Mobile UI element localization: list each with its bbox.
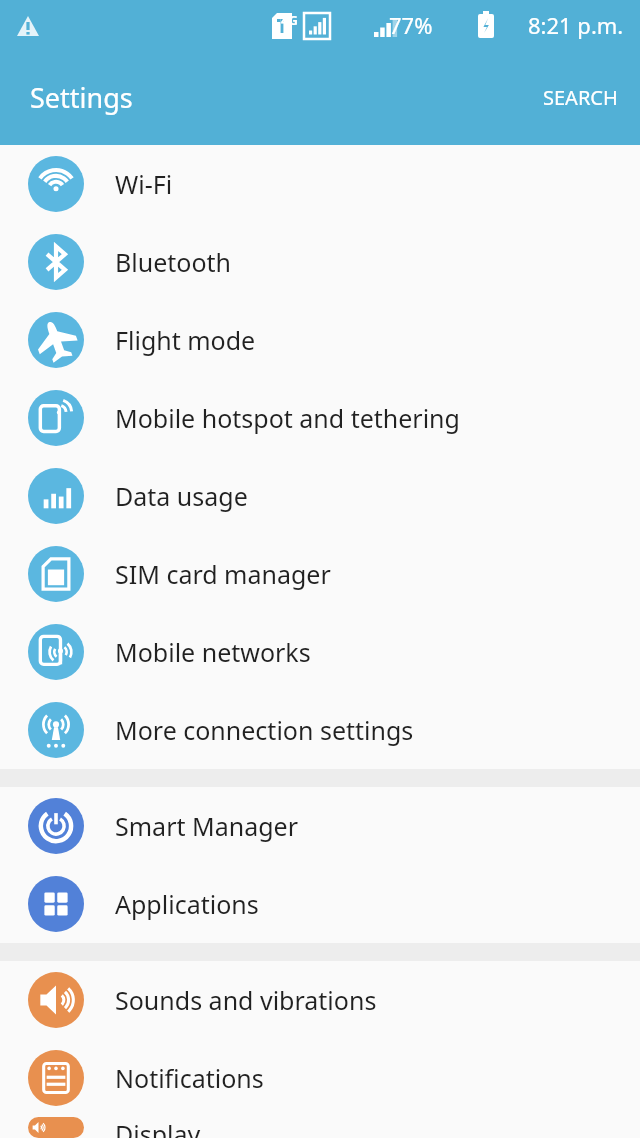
staticText: Settings bbox=[30, 79, 133, 116]
staticText: Mobile hotspot and tethering bbox=[115, 401, 460, 435]
staticText: Smart Manager bbox=[115, 809, 298, 843]
staticText: Display bbox=[115, 1117, 201, 1138]
button[interactable]: Smart Manager bbox=[0, 787, 640, 865]
staticText: 8:21 p.m. bbox=[528, 10, 624, 40]
button[interactable]: Applications bbox=[0, 865, 640, 943]
staticText: 4G bbox=[281, 11, 298, 29]
button[interactable]: Bluetooth bbox=[0, 223, 640, 301]
button[interactable]: Flight mode bbox=[0, 301, 640, 379]
staticText: Bluetooth bbox=[115, 245, 232, 279]
button[interactable]: SIM card manager bbox=[0, 535, 640, 613]
staticText: 77% bbox=[389, 10, 433, 40]
button[interactable]: Mobile networks bbox=[0, 613, 640, 691]
staticText: Data usage bbox=[115, 479, 248, 513]
button[interactable]: Display bbox=[0, 1117, 640, 1138]
button[interactable]: Data usage bbox=[0, 457, 640, 535]
staticText: SEARCH bbox=[543, 84, 618, 111]
button[interactable]: Wi-Fi bbox=[0, 145, 640, 223]
button[interactable]: Notifications bbox=[0, 1039, 640, 1117]
staticText: SIM card manager bbox=[115, 557, 331, 591]
staticText: Flight mode bbox=[115, 323, 256, 357]
button[interactable]: More connection settings bbox=[0, 691, 640, 769]
staticText: Mobile networks bbox=[115, 635, 311, 669]
button[interactable]: Mobile hotspot and tethering bbox=[0, 379, 640, 457]
staticText: Wi-Fi bbox=[115, 167, 173, 201]
staticText: Sounds and vibrations bbox=[115, 983, 377, 1017]
staticText: More connection settings bbox=[115, 713, 414, 747]
button[interactable]: SEARCH bbox=[521, 70, 640, 125]
staticText: Applications bbox=[115, 887, 259, 921]
staticText: Notifications bbox=[115, 1061, 264, 1095]
button[interactable]: Sounds and vibrations bbox=[0, 961, 640, 1039]
